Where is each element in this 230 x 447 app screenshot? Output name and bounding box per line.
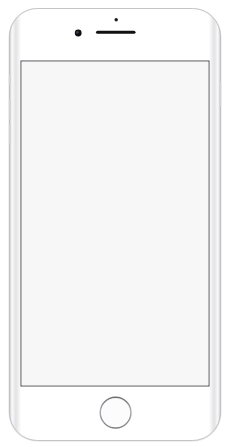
button[interactable]: Home button — [100, 397, 131, 428]
other: iPhone device mockup with blank screen — [0, 0, 230, 447]
